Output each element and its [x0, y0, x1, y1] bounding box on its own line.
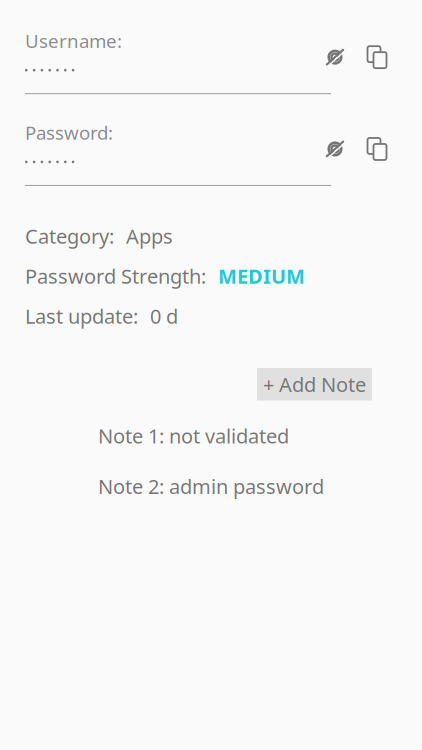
button[interactable]: Show Username: — [313, 37, 357, 77]
button[interactable]: + Add Note — [257, 368, 372, 401]
staticText: Category: — [25, 223, 114, 249]
staticText: Password: — [25, 120, 113, 145]
staticText: + Add Note — [263, 371, 366, 398]
staticText: Username: — [25, 28, 122, 53]
button[interactable]: Copy Username: — [357, 37, 397, 77]
staticText: Note 2: admin password — [98, 473, 324, 500]
button[interactable]: Show Password: — [313, 129, 357, 169]
staticText: Apps — [126, 223, 173, 249]
button[interactable]: Copy Password: — [357, 129, 397, 169]
staticText: Last update: — [25, 303, 138, 329]
staticText: 0 d — [150, 303, 178, 329]
staticText: Password Strength: — [25, 263, 206, 289]
staticText: MEDIUM — [218, 263, 305, 289]
staticText: Note 1: not validated — [98, 422, 289, 449]
